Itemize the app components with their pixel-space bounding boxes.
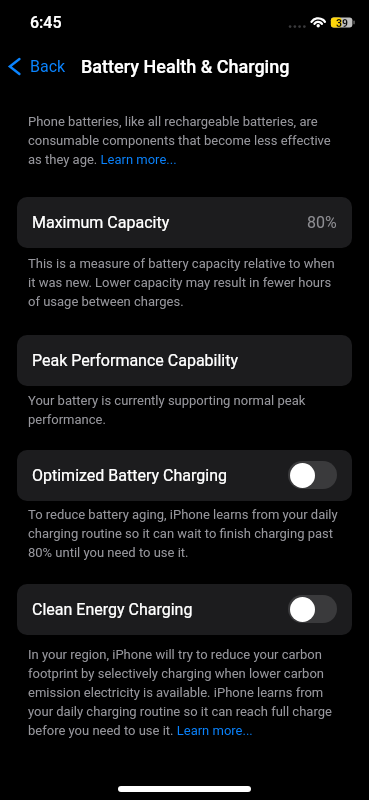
staticText: Phone batteries, like all rechargeable b… <box>28 114 345 167</box>
staticText: Peak Performance Capability <box>32 351 239 370</box>
staticText: Your battery is currently supporting nor… <box>28 393 345 427</box>
button[interactable]: Clean Energy Charging <box>17 584 352 635</box>
button[interactable]: Peak Performance Capability <box>17 335 352 386</box>
button[interactable]: Optimized Battery Charging <box>288 461 337 489</box>
button[interactable]: Optimized Battery Charging <box>17 450 352 501</box>
staticText: Maximum Capacity <box>32 213 170 232</box>
button[interactable]: Maximum Capacity <box>17 197 352 248</box>
button[interactable]: Learn more about clean energy charging <box>177 723 253 738</box>
staticText: Optimized Battery Charging <box>32 466 227 485</box>
button[interactable]: Back <box>0 50 74 83</box>
staticText: Clean Energy Charging <box>32 600 193 619</box>
button[interactable]: Clean Energy Charging <box>288 595 337 623</box>
staticText: In your region, iPhone will try to reduc… <box>28 647 345 738</box>
staticText: 6:45 <box>30 13 62 32</box>
staticText: To reduce battery aging, iPhone learns f… <box>28 507 345 560</box>
staticText: Back <box>30 57 66 76</box>
staticText: 39 <box>336 17 349 27</box>
button[interactable]: Learn more about battery health <box>100 152 176 167</box>
staticText: 80% <box>307 213 337 232</box>
staticText: This is a measure of battery capacity re… <box>28 256 345 309</box>
staticText: Battery Health & Charging <box>81 56 290 77</box>
